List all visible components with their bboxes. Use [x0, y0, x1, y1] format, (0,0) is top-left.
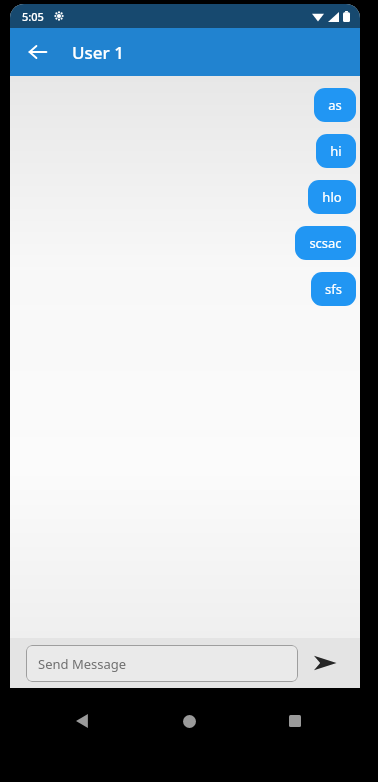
button[interactable]: hi	[316, 134, 356, 168]
staticText: hi	[330, 142, 342, 160]
staticText: scsac	[309, 234, 342, 252]
button[interactable]: Send	[306, 644, 344, 682]
button[interactable]: as	[314, 88, 356, 122]
button[interactable]: scsac	[295, 226, 356, 260]
staticText: hlo	[322, 188, 342, 206]
staticText: Send Message	[38, 655, 127, 673]
staticText: 5:05	[22, 9, 44, 24]
button[interactable]: Send Message	[26, 645, 298, 682]
staticText: as	[328, 96, 342, 114]
button[interactable]: Home	[166, 698, 212, 744]
staticText: sfs	[325, 280, 342, 298]
button[interactable]: sfs	[311, 272, 356, 306]
staticText: User 1	[72, 41, 124, 64]
button[interactable]: Back	[20, 34, 56, 70]
button[interactable]: hlo	[308, 180, 356, 214]
button[interactable]: Back	[60, 698, 106, 744]
button[interactable]: Recents	[272, 698, 318, 744]
